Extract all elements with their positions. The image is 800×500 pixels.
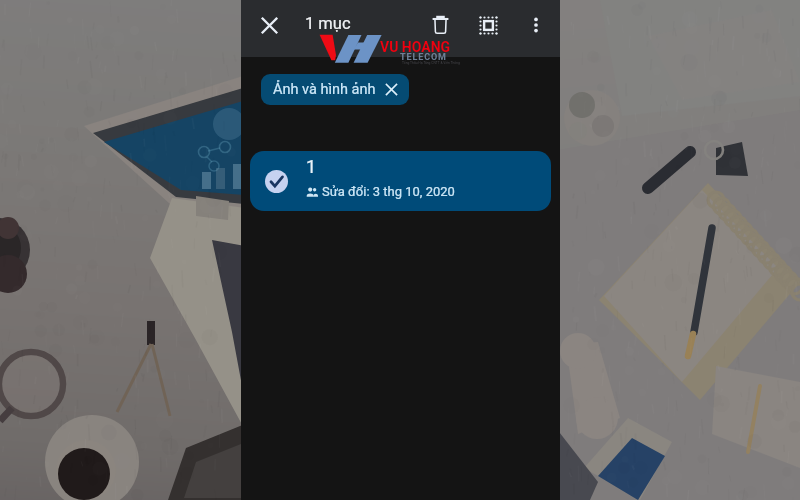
button[interactable]: 1 bbox=[250, 151, 551, 211]
staticText: Tổng Thầu Hạ Tầng CNTT & Viễn Thông bbox=[402, 61, 460, 65]
staticText: 1 bbox=[306, 156, 317, 177]
button[interactable]: Select all bbox=[468, 5, 508, 45]
staticText: Ảnh và hình ảnh bbox=[273, 81, 376, 98]
staticText: Sửa đổi: 3 thg 10, 2020 bbox=[322, 184, 455, 199]
staticText: VU HOANG bbox=[380, 39, 451, 55]
staticText: TELECOM bbox=[400, 52, 447, 63]
button[interactable]: Ảnh và hình ảnh bbox=[261, 74, 409, 105]
button[interactable]: Delete bbox=[420, 5, 460, 45]
button[interactable]: Close bbox=[249, 5, 289, 45]
button[interactable]: More options bbox=[516, 5, 556, 45]
staticText: 1 mục bbox=[305, 14, 351, 33]
